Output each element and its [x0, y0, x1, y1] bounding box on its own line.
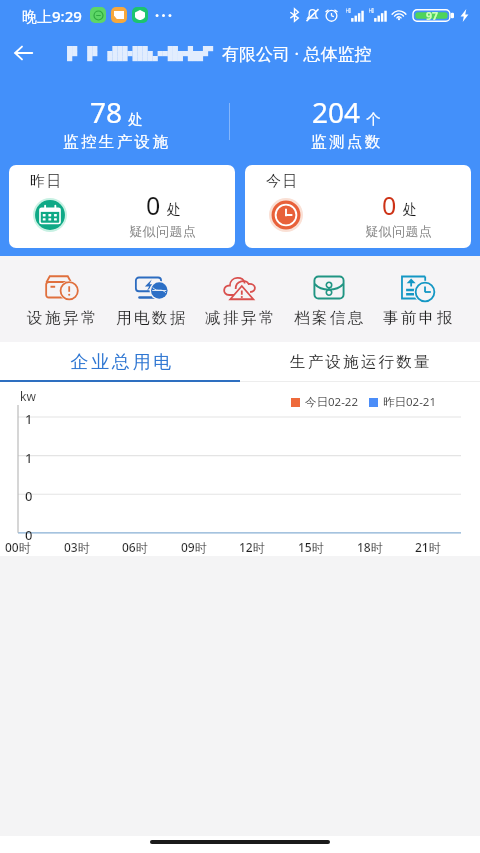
- staticText: 个: [366, 110, 381, 128]
- staticText: 今日02-22: [305, 394, 359, 410]
- staticText: 00时: [5, 539, 31, 555]
- staticText: 0: [382, 188, 397, 222]
- staticText: 用电数据: [116, 308, 188, 328]
- staticText: 档案信息: [294, 308, 366, 328]
- staticText: 晚上9:29: [22, 6, 82, 26]
- staticText: 昨日02-21: [383, 394, 437, 410]
- staticText: 设施异常: [27, 308, 99, 328]
- staticText: 处: [403, 201, 417, 219]
- staticText: 0: [25, 487, 33, 501]
- staticText: 06时: [122, 539, 148, 555]
- staticText: 事前申报: [383, 308, 455, 328]
- staticText: 企业总用电: [69, 351, 173, 374]
- staticText: 生产设施运行数量: [290, 352, 432, 372]
- button[interactable]: 今日: [245, 165, 471, 248]
- staticText: 监测点数: [311, 132, 383, 152]
- staticText: 处: [167, 201, 181, 219]
- button[interactable]: 昨日: [9, 165, 235, 248]
- staticText: 疑似问题点: [129, 223, 197, 239]
- staticText: 减排异常: [205, 308, 277, 328]
- button[interactable]: 设施异常: [18, 275, 106, 342]
- staticText: 监控生产设施: [63, 132, 171, 152]
- staticText: 15时: [298, 539, 324, 555]
- staticText: 78: [90, 93, 123, 131]
- staticText: 03时: [64, 539, 90, 555]
- staticText: 21时: [415, 539, 441, 555]
- staticText: 97: [426, 9, 439, 23]
- button[interactable]: 用电数据: [106, 275, 195, 342]
- staticText: 今日: [266, 172, 300, 191]
- staticText: 18时: [357, 539, 383, 555]
- staticText: 09时: [181, 539, 207, 555]
- staticText: 有限公司 · 总体监控: [222, 42, 372, 65]
- button[interactable]: 返回: [0, 30, 46, 76]
- staticText: 1: [25, 410, 33, 424]
- staticText: 疑似问题点: [365, 223, 433, 239]
- button[interactable]: 事前申报: [373, 275, 462, 342]
- staticText: 1: [25, 449, 33, 463]
- button[interactable]: 生产设施运行数量: [240, 342, 480, 382]
- staticText: 0: [25, 526, 33, 540]
- button[interactable]: 减排异常: [195, 275, 284, 342]
- staticText: 处: [128, 110, 143, 128]
- staticText: 0: [146, 188, 161, 222]
- button[interactable]: 档案信息: [284, 275, 373, 342]
- staticText: 12时: [239, 539, 265, 555]
- button[interactable]: 企业总用电: [0, 342, 240, 382]
- staticText: 204: [312, 93, 361, 131]
- staticText: kw: [20, 388, 36, 404]
- staticText: 昨日: [30, 172, 64, 191]
